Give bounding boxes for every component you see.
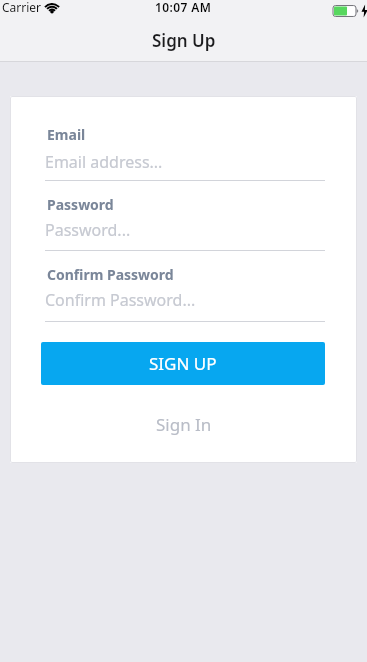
staticText: 10:07 AM	[155, 0, 212, 15]
staticText: Carrier	[2, 0, 42, 15]
button[interactable]: SIGN UP	[41, 342, 325, 385]
staticText: Email	[47, 125, 86, 144]
staticText: Sign Up	[152, 29, 216, 52]
staticText: Confirm Password...	[45, 289, 196, 311]
staticText: Email address...	[45, 151, 163, 173]
button[interactable]: Sign In	[146, 413, 222, 436]
staticText: SIGN UP	[149, 352, 217, 375]
staticText: Sign In	[156, 413, 212, 436]
staticText: Password...	[45, 219, 131, 241]
staticText: Password	[47, 195, 114, 214]
staticText: Confirm Password	[47, 265, 174, 284]
